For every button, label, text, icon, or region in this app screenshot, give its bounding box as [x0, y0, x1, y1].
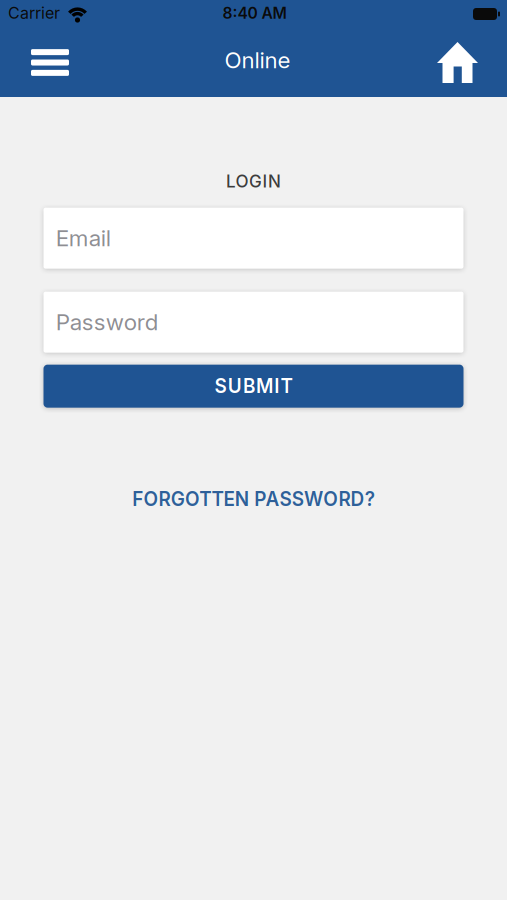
button[interactable]: Menu [31, 49, 69, 76]
button[interactable]: FORGOTTEN PASSWORD? [103, 488, 403, 510]
staticText: FORGOTTEN PASSWORD? [132, 488, 375, 510]
button[interactable]: S [43, 365, 463, 408]
button[interactable]: Password [43, 292, 463, 353]
staticText: B [243, 375, 255, 398]
button[interactable]: Email [43, 208, 463, 269]
staticText: Carrier [8, 3, 60, 23]
staticText: M [256, 375, 273, 398]
staticText: 8:40 AM [222, 4, 286, 22]
staticText: Password [56, 308, 159, 336]
staticText: Email [56, 224, 111, 252]
staticText: S [214, 375, 226, 398]
staticText: U [228, 375, 242, 398]
staticText: Online [224, 46, 290, 73]
staticText: T [280, 375, 292, 398]
button[interactable]: Home [437, 42, 478, 83]
staticText: LOGIN [226, 171, 281, 192]
staticText: I [274, 375, 279, 398]
